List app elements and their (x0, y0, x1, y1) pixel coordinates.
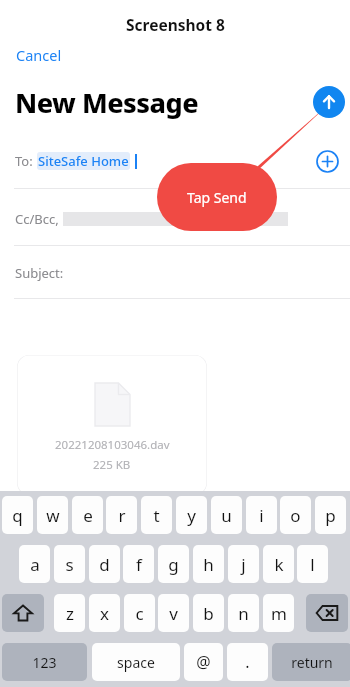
button[interactable]: t (141, 496, 172, 534)
button[interactable]: w (37, 496, 68, 534)
button[interactable]: y (176, 496, 207, 534)
button[interactable]: p (315, 496, 346, 534)
button[interactable]: h (193, 545, 224, 583)
button[interactable]: space (92, 643, 180, 681)
button[interactable]: Send (313, 86, 345, 118)
button[interactable]: l (297, 545, 328, 583)
button[interactable]: g (158, 545, 189, 583)
staticText: y (187, 504, 196, 527)
button[interactable]: d (89, 545, 120, 583)
staticText: 225 KB (93, 457, 131, 473)
staticText: . (245, 651, 250, 673)
button[interactable]: return (272, 643, 350, 681)
button[interactable]: j (228, 545, 259, 583)
button[interactable]: SiteSafe Home (37, 152, 130, 170)
staticText: space (117, 653, 155, 672)
button[interactable]: b (193, 594, 224, 632)
staticText: k (274, 553, 284, 576)
staticText: t (153, 504, 160, 527)
staticText: f (136, 553, 142, 576)
button[interactable]: Backspace (306, 594, 348, 632)
staticText: a (30, 553, 40, 576)
staticText: Screenshot 8 (126, 14, 225, 35)
staticText: SiteSafe Home (38, 152, 129, 170)
staticText: m (271, 602, 287, 625)
button[interactable]: f (123, 545, 154, 583)
staticText: b (203, 602, 214, 625)
button[interactable]: q (2, 496, 33, 534)
staticText: v (169, 602, 178, 625)
button[interactable]: Cancel (14, 43, 64, 67)
button[interactable]: m (263, 594, 294, 632)
staticText: o (290, 504, 301, 527)
staticText: d (99, 553, 110, 576)
staticText: i (259, 504, 264, 527)
button[interactable]: Tap Send (157, 163, 277, 231)
staticText: l (310, 553, 315, 576)
staticText: g (168, 553, 179, 576)
button[interactable]: z (54, 594, 85, 632)
staticText: x (100, 602, 109, 625)
staticText: w (46, 504, 60, 527)
button[interactable]: o (280, 496, 311, 534)
staticText: Subject: (15, 264, 64, 282)
staticText: e (83, 504, 93, 527)
button[interactable]: 123 (2, 643, 87, 681)
staticText: return (291, 653, 333, 672)
button[interactable]: n (228, 594, 259, 632)
staticText: n (238, 602, 249, 625)
button[interactable]: 20221208103046.dav (17, 355, 207, 495)
staticText: c (135, 602, 144, 625)
button[interactable]: u (211, 496, 242, 534)
staticText: Cc/Bcc, (15, 210, 59, 228)
staticText: @ (196, 651, 211, 673)
staticText: New Message (15, 84, 199, 121)
button[interactable]: Shift (2, 594, 44, 632)
button[interactable]: i (246, 496, 277, 534)
staticText: u (221, 504, 232, 527)
staticText: 123 (32, 653, 57, 672)
staticText: j (241, 553, 246, 576)
staticText: Cancel (16, 45, 62, 65)
staticText: To: (15, 152, 37, 170)
button[interactable]: v (158, 594, 189, 632)
button[interactable]: x (89, 594, 120, 632)
button[interactable]: @ (184, 643, 223, 681)
button[interactable]: a (19, 545, 50, 583)
button[interactable]: e (72, 496, 103, 534)
button[interactable]: s (54, 545, 85, 583)
button[interactable]: . (227, 643, 268, 681)
staticText: h (203, 553, 214, 576)
button[interactable]: Add recipient (314, 148, 340, 174)
staticText: q (12, 504, 23, 527)
button[interactable]: r (106, 496, 137, 534)
staticText: r (118, 504, 126, 527)
button[interactable]: k (263, 545, 294, 583)
staticText: z (66, 602, 74, 625)
button[interactable]: c (124, 594, 155, 632)
staticText: p (325, 504, 336, 527)
staticText: Tap Send (187, 188, 247, 207)
staticText: s (65, 553, 74, 576)
staticText: 20221208103046.dav (55, 437, 170, 453)
